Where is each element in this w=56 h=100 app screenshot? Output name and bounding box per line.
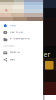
button[interactable]: How To Use [0, 29, 43, 35]
staticText: Share [10, 58, 15, 61]
staticText: All Download Files [10, 37, 30, 40]
staticText: er [44, 49, 51, 59]
button[interactable]: Contact us [0, 49, 43, 55]
staticText: Contact us [10, 50, 20, 53]
button[interactable]: All Download Files [0, 35, 43, 42]
button[interactable]: Home [0, 22, 43, 29]
staticText: How To Use [10, 30, 23, 33]
button[interactable]: Share [0, 56, 43, 63]
staticText: We Love Views [3, 45, 14, 47]
staticText: Home [10, 24, 16, 27]
